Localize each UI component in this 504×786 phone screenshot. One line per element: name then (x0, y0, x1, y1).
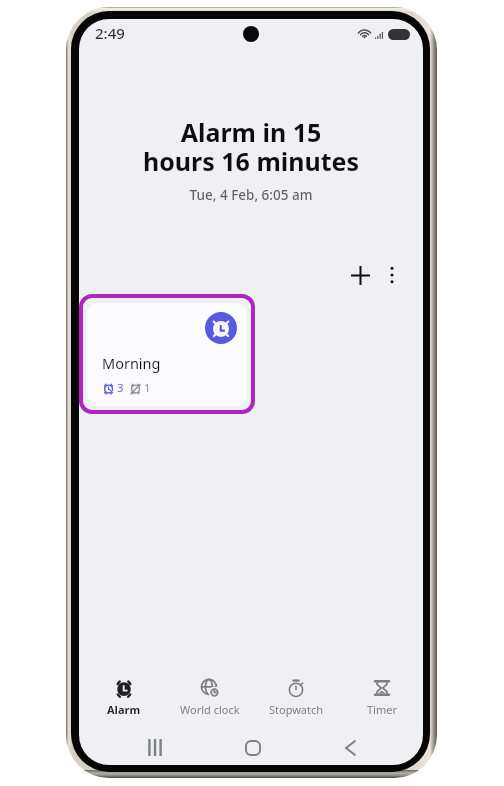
staticText: Morning (102, 353, 161, 373)
button[interactable]: More options (372, 255, 412, 295)
button[interactable]: Timer (339, 669, 423, 727)
button[interactable]: Alarm (81, 669, 167, 727)
staticText: World clock (180, 702, 240, 717)
staticText: 1 (144, 380, 151, 396)
button[interactable]: Back (332, 731, 368, 764)
button[interactable]: Add alarm (340, 255, 380, 295)
button[interactable]: Morning (79, 294, 255, 414)
staticText: Alarm in 15 hours 16 minutes (79, 115, 423, 178)
button[interactable]: Recents (137, 731, 173, 764)
staticText: Stopwatch (269, 702, 324, 717)
button[interactable]: World clock (167, 669, 253, 727)
staticText: Tue, 4 Feb, 6:05 am (79, 186, 423, 204)
button[interactable]: Home (235, 731, 271, 764)
staticText: 2:49 (95, 23, 125, 43)
staticText: Timer (367, 702, 397, 717)
button[interactable]: Stopwatch (253, 669, 339, 727)
staticText: 3 (117, 380, 124, 396)
staticText: Alarm (107, 702, 141, 717)
